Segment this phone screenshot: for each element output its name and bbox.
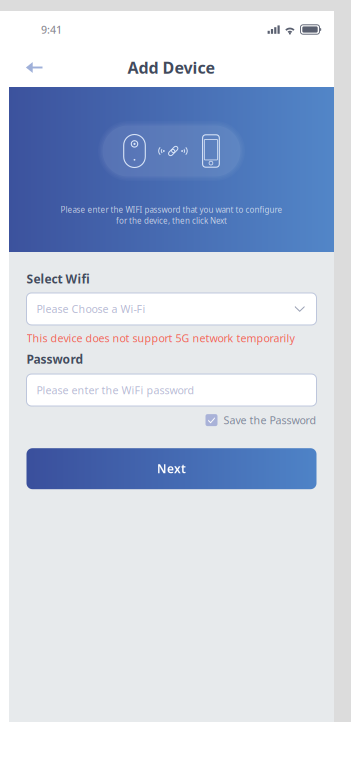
staticText: Add Device	[127, 57, 215, 78]
staticText: Please Choose a Wi-Fi	[36, 302, 145, 316]
button[interactable]: Save the Password	[205, 413, 316, 427]
button[interactable]: Please Choose a Wi-Fi	[26, 293, 316, 325]
button[interactable]: Next	[26, 448, 316, 489]
staticText: Select Wifi	[26, 271, 89, 287]
staticText: Next	[157, 461, 186, 477]
button[interactable]: Back	[19, 54, 49, 80]
staticText: for the device, then click Next	[116, 215, 227, 226]
staticText: Password	[26, 351, 83, 367]
staticText: 9:41	[41, 22, 62, 37]
button[interactable]: Please enter the WiFi password	[26, 374, 316, 406]
staticText: Please enter the WiFi password	[36, 383, 194, 397]
staticText: Please enter the WIFI password that you …	[60, 204, 282, 215]
staticText: Save the Password	[223, 413, 316, 427]
staticText: This device does not support 5G network …	[26, 331, 294, 345]
